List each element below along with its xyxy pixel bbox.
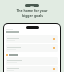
staticText: The home for your bbox=[16, 8, 48, 13]
staticText: NEW bbox=[30, 5, 35, 7]
button[interactable] bbox=[6, 57, 58, 65]
button[interactable] bbox=[6, 53, 58, 56]
button[interactable] bbox=[6, 66, 58, 72]
button[interactable] bbox=[6, 35, 58, 43]
button[interactable] bbox=[6, 44, 58, 52]
staticText: bigger goals bbox=[22, 13, 43, 18]
button[interactable]: NEW bbox=[25, 4, 39, 7]
